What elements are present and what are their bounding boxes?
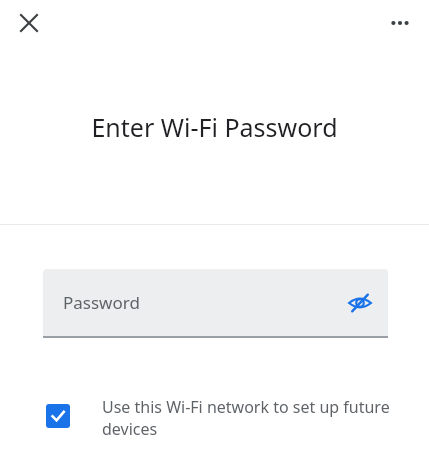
staticText: Enter Wi-Fi Password [91,110,338,144]
button[interactable]: Close [9,3,49,43]
button[interactable]: Use this Wi-Fi network to set up future … [40,396,405,440]
button[interactable]: Password [43,269,388,338]
button[interactable]: More options [380,3,420,43]
button[interactable]: Show password [340,283,380,323]
staticText: Use this Wi-Fi network to set up future … [102,396,405,440]
staticText: Password [63,291,140,314]
